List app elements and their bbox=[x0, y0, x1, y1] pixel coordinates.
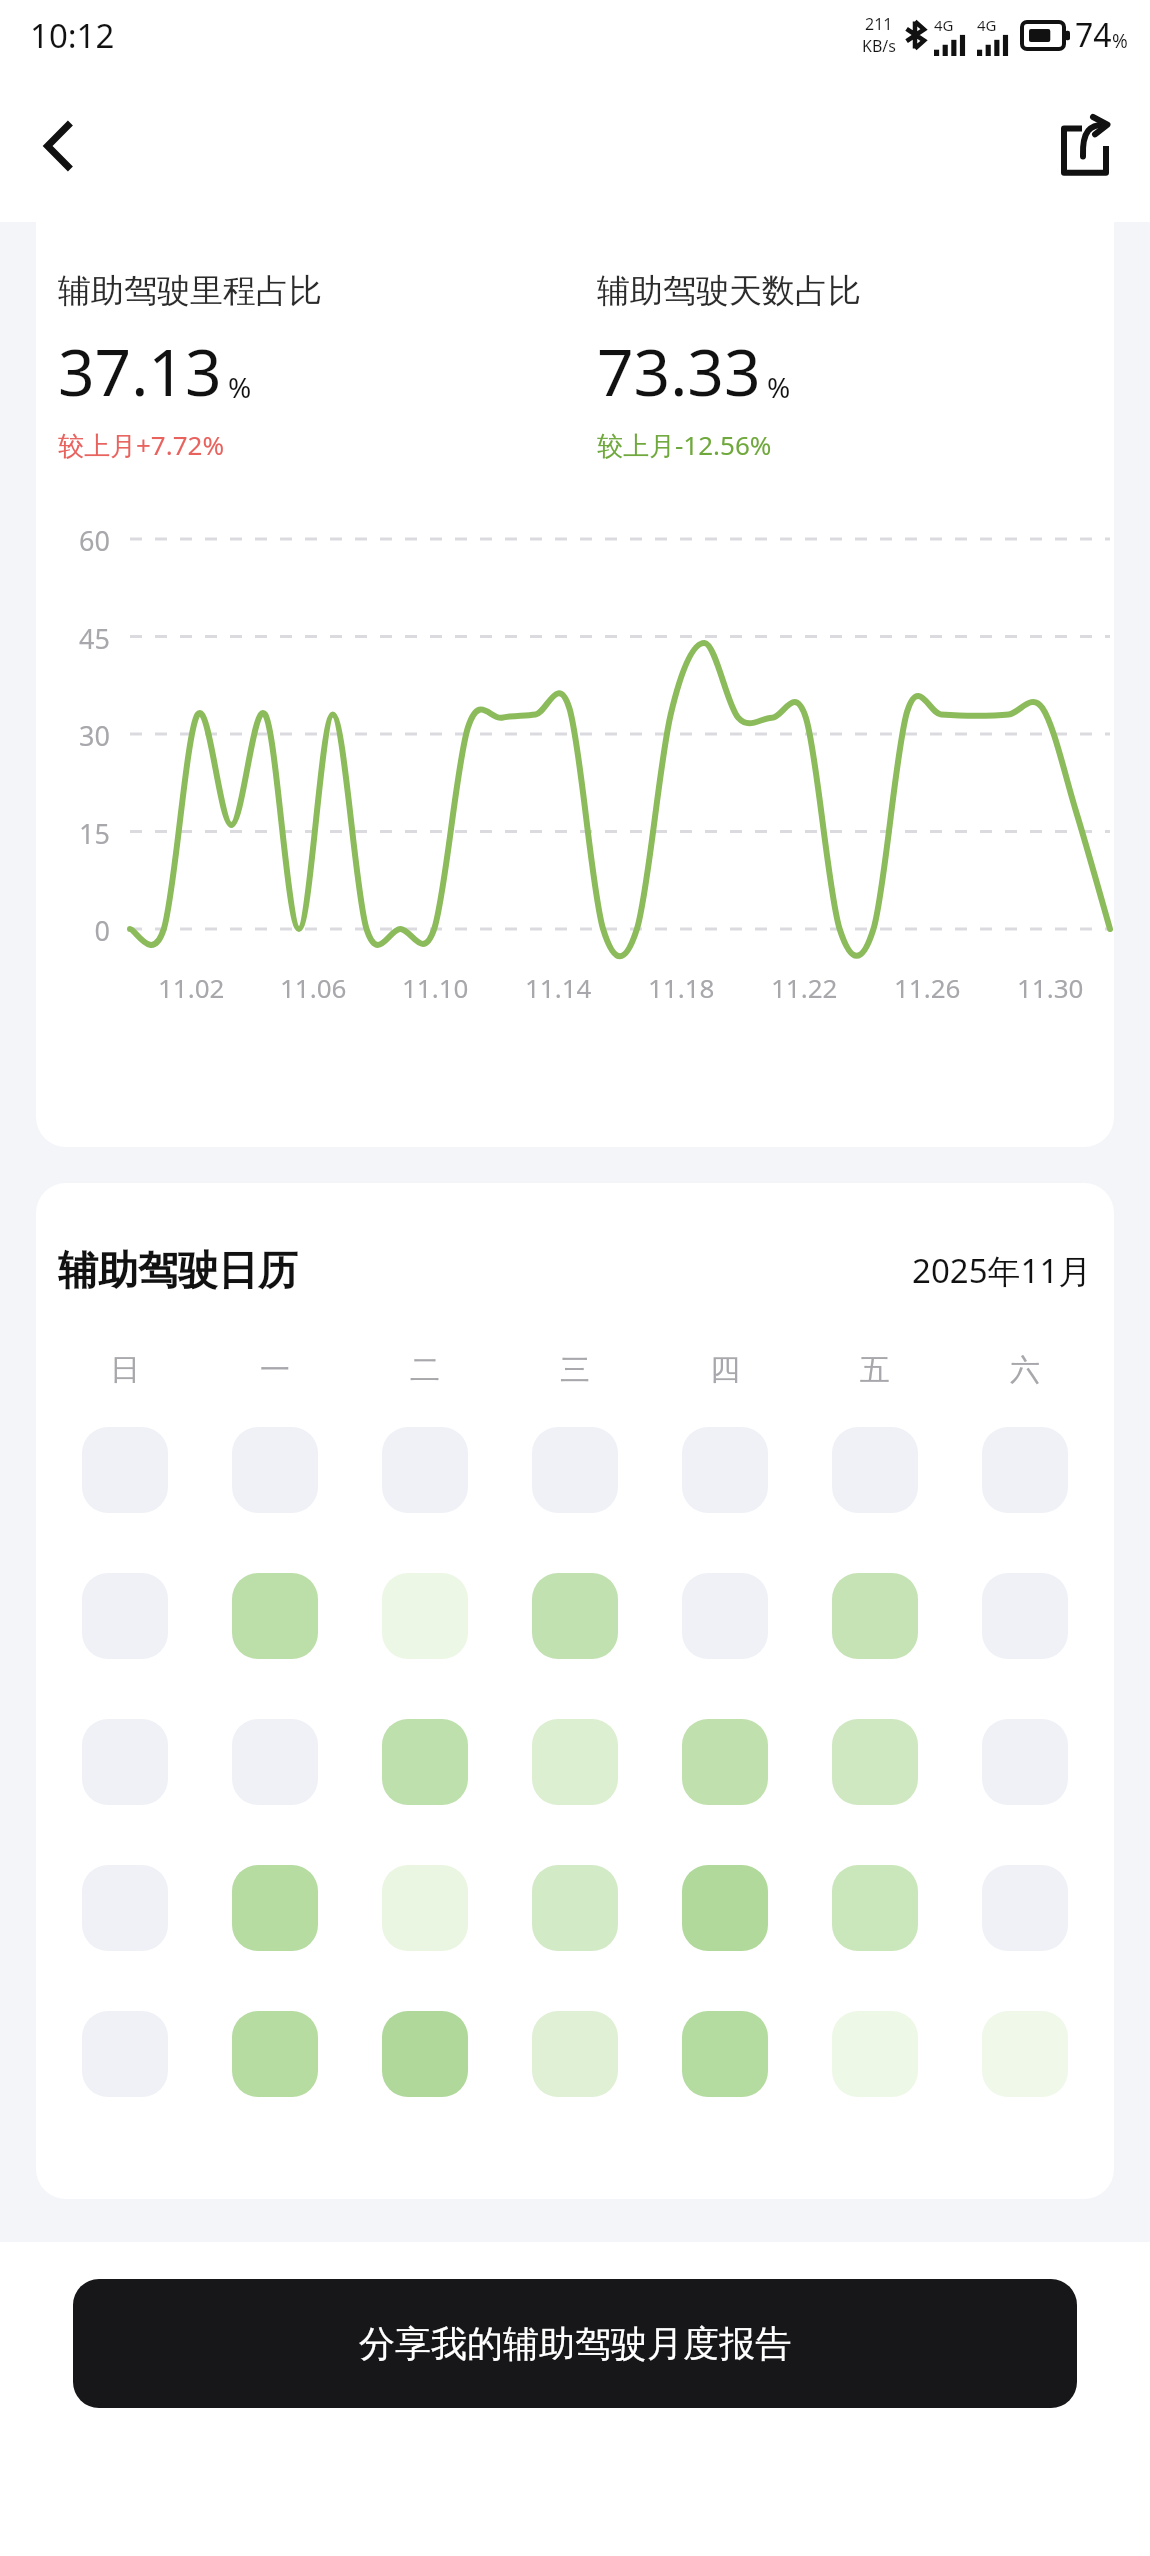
staticText: 较上月-12.56% bbox=[597, 427, 772, 463]
button[interactable]: Share bbox=[1042, 103, 1128, 189]
button[interactable] bbox=[682, 1865, 768, 1951]
staticText: 辅助驾驶日历 bbox=[58, 1245, 298, 1295]
staticText: 分享我的辅助驾驶月度报告 bbox=[359, 2321, 791, 2366]
staticText: 日 bbox=[110, 1351, 140, 1389]
button[interactable] bbox=[982, 1719, 1068, 1805]
staticText: % bbox=[767, 368, 791, 406]
staticText: 11.30 bbox=[1017, 970, 1084, 1005]
staticText: 4G bbox=[934, 15, 954, 35]
button[interactable] bbox=[532, 1427, 618, 1513]
button[interactable]: Back bbox=[20, 107, 98, 185]
button[interactable] bbox=[232, 1573, 318, 1659]
staticText: 三 bbox=[560, 1351, 590, 1389]
staticText: KB/s bbox=[862, 35, 896, 57]
staticText: 11.10 bbox=[402, 970, 469, 1005]
staticText: 30 bbox=[60, 717, 110, 754]
button[interactable] bbox=[82, 1719, 168, 1805]
button[interactable] bbox=[82, 1427, 168, 1513]
staticText: 11.06 bbox=[280, 970, 347, 1005]
staticText: 11.14 bbox=[525, 970, 592, 1005]
staticText: 一 bbox=[260, 1351, 290, 1389]
staticText: 11.22 bbox=[771, 970, 838, 1005]
button[interactable] bbox=[832, 1719, 918, 1805]
staticText: 辅助驾驶里程占比 bbox=[58, 270, 322, 312]
button[interactable] bbox=[832, 2011, 918, 2097]
button[interactable] bbox=[232, 1719, 318, 1805]
button[interactable] bbox=[832, 1427, 918, 1513]
staticText: 四 bbox=[710, 1351, 740, 1389]
staticText: 五 bbox=[860, 1351, 890, 1389]
button[interactable] bbox=[232, 2011, 318, 2097]
button[interactable] bbox=[382, 1573, 468, 1659]
staticText: 11.26 bbox=[894, 970, 961, 1005]
button[interactable] bbox=[82, 1573, 168, 1659]
staticText: 211 bbox=[865, 13, 893, 35]
button[interactable] bbox=[82, 1865, 168, 1951]
staticText: 15 bbox=[60, 815, 110, 852]
button[interactable] bbox=[382, 1719, 468, 1805]
staticText: % bbox=[1112, 28, 1128, 54]
staticText: 二 bbox=[410, 1351, 440, 1389]
button[interactable] bbox=[832, 1573, 918, 1659]
staticText: 辅助驾驶天数占比 bbox=[597, 270, 861, 312]
button[interactable] bbox=[682, 1427, 768, 1513]
staticText: 4G bbox=[977, 15, 997, 35]
button[interactable] bbox=[82, 2011, 168, 2097]
button[interactable] bbox=[982, 1865, 1068, 1951]
button[interactable] bbox=[232, 1427, 318, 1513]
staticText: % bbox=[228, 368, 252, 406]
staticText: 11.18 bbox=[648, 970, 715, 1005]
button[interactable] bbox=[682, 2011, 768, 2097]
button[interactable] bbox=[382, 1427, 468, 1513]
staticText: 37.13 bbox=[58, 328, 222, 415]
button[interactable] bbox=[382, 2011, 468, 2097]
button[interactable] bbox=[682, 1719, 768, 1805]
button[interactable] bbox=[982, 2011, 1068, 2097]
button[interactable] bbox=[532, 2011, 618, 2097]
button[interactable] bbox=[232, 1865, 318, 1951]
staticText: 45 bbox=[60, 620, 110, 657]
button[interactable] bbox=[532, 1719, 618, 1805]
button[interactable]: 分享我的辅助驾驶月度报告 bbox=[73, 2279, 1077, 2408]
button[interactable] bbox=[982, 1427, 1068, 1513]
button[interactable] bbox=[982, 1573, 1068, 1659]
button[interactable] bbox=[532, 1573, 618, 1659]
button[interactable] bbox=[532, 1865, 618, 1951]
staticText: 11.02 bbox=[158, 970, 225, 1005]
button[interactable] bbox=[382, 1865, 468, 1951]
staticText: 2025年11月 bbox=[912, 1248, 1092, 1293]
staticText: 73.33 bbox=[597, 328, 761, 415]
staticText: 74 bbox=[1075, 13, 1112, 57]
staticText: 较上月+7.72% bbox=[58, 427, 225, 463]
button[interactable] bbox=[682, 1573, 768, 1659]
button[interactable] bbox=[832, 1865, 918, 1951]
staticText: 六 bbox=[1010, 1351, 1040, 1389]
staticText: 60 bbox=[60, 522, 110, 559]
staticText: 10:12 bbox=[30, 13, 115, 58]
staticText: 0 bbox=[60, 912, 110, 949]
